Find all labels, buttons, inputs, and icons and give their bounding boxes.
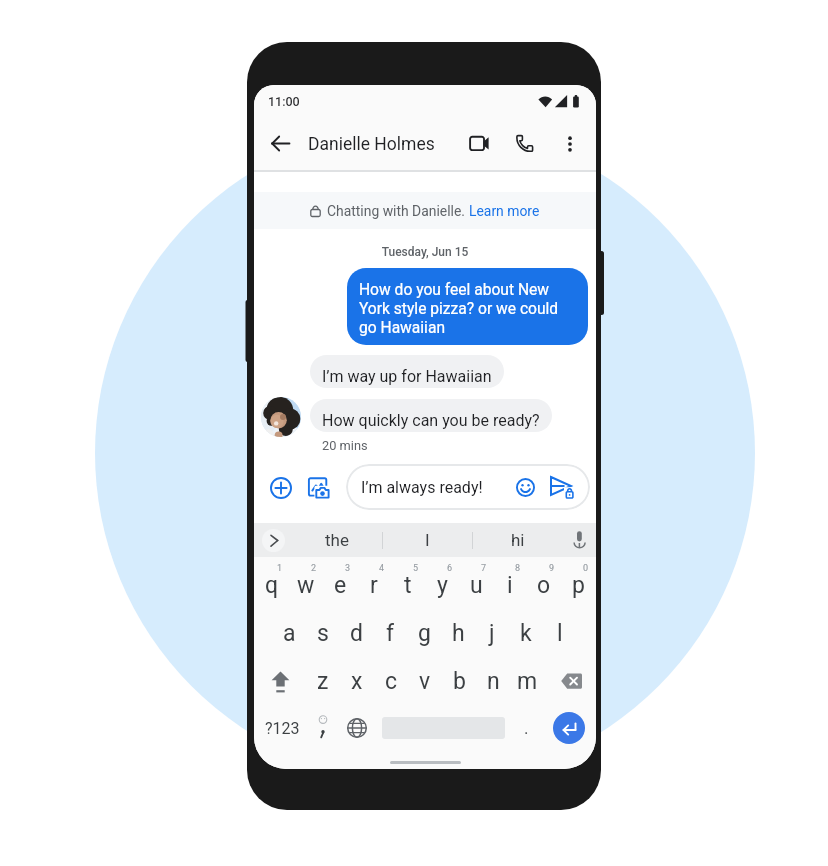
staticText: 4 — [379, 563, 385, 574]
button[interactable]: n — [476, 665, 510, 697]
staticText: c — [385, 668, 398, 695]
staticText: t — [404, 572, 412, 599]
button[interactable]: a — [273, 617, 306, 649]
staticText: d — [350, 620, 363, 647]
button[interactable]: Backspace — [546, 665, 596, 697]
button[interactable]: I — [383, 523, 472, 557]
button[interactable]: Comma and emoji — [306, 706, 340, 750]
staticText: b — [453, 668, 466, 695]
button[interactable]: 8 — [493, 564, 527, 600]
staticText: x — [351, 668, 363, 695]
button[interactable]: 2 — [289, 564, 323, 600]
button[interactable]: x — [340, 665, 374, 697]
button[interactable]: Send message — [544, 469, 580, 505]
staticText: 2 — [311, 563, 317, 574]
button[interactable]: Danielle Holmes profile photo — [261, 397, 301, 437]
button[interactable]: Enter — [553, 712, 585, 744]
button[interactable]: 3 — [323, 564, 357, 600]
staticText: Chatting with Danielle. — [327, 203, 469, 219]
staticText: n — [487, 668, 500, 695]
button[interactable]: How quickly can you be ready? — [310, 399, 552, 432]
button[interactable]: Learn more — [469, 203, 540, 219]
button[interactable]: Add attachment — [265, 472, 297, 504]
button[interactable]: More suggestions — [254, 523, 292, 557]
staticText: 9 — [549, 563, 555, 574]
staticText: l — [557, 620, 563, 647]
button[interactable]: d — [339, 617, 373, 649]
button[interactable]: Emoji — [509, 471, 541, 503]
button[interactable]: z — [306, 665, 340, 697]
button[interactable]: 4 — [357, 564, 391, 600]
staticText: hi — [511, 530, 525, 550]
staticText: r — [370, 572, 378, 599]
button[interactable]: Change keyboard language — [340, 706, 374, 750]
button[interactable]: Chatting with Danielle. — [254, 192, 596, 229]
button[interactable]: c — [374, 665, 408, 697]
button[interactable]: ?123 — [260, 706, 305, 750]
staticText: o — [537, 572, 551, 599]
staticText: I’m always ready! — [361, 478, 483, 497]
staticText: v — [419, 668, 431, 695]
staticText: w — [297, 572, 315, 599]
staticText: 3 — [345, 563, 351, 574]
button[interactable]: the — [292, 523, 382, 557]
staticText: j — [489, 620, 495, 647]
staticText: 11:00 — [268, 94, 300, 109]
staticText: e — [334, 572, 347, 599]
staticText: y — [437, 572, 448, 599]
button[interactable]: b — [442, 665, 476, 697]
staticText: u — [470, 572, 483, 599]
button[interactable]: 0 — [561, 564, 595, 600]
button[interactable]: Call — [503, 122, 547, 166]
staticText: h — [452, 620, 465, 647]
button[interactable]: hi — [473, 523, 562, 557]
button[interactable]: k — [509, 617, 543, 649]
button[interactable]: j — [475, 617, 509, 649]
staticText: Tuesday, Jun 15 — [254, 245, 596, 259]
button[interactable]: I’m way up for Hawaiian — [310, 355, 504, 388]
button[interactable]: s — [306, 617, 339, 649]
staticText: a — [283, 620, 296, 647]
staticText: ?123 — [265, 719, 300, 738]
staticText: . — [524, 718, 529, 738]
button[interactable]: How do you feel about New York style piz… — [347, 268, 588, 345]
staticText: How do you feel about New York style piz… — [359, 281, 559, 337]
button[interactable]: Video call — [457, 121, 501, 165]
button[interactable]: 9 — [527, 564, 561, 600]
button[interactable]: f — [373, 617, 407, 649]
button[interactable]: 7 — [459, 564, 493, 600]
staticText: 7 — [481, 563, 487, 574]
button[interactable]: g — [407, 617, 441, 649]
staticText: k — [520, 620, 532, 647]
button[interactable]: I’m always ready! — [346, 464, 590, 510]
button[interactable]: Danielle Holmes — [308, 134, 435, 155]
button[interactable]: 5 — [391, 564, 425, 600]
staticText: 5 — [413, 563, 419, 574]
staticText: f — [386, 620, 394, 647]
button[interactable]: Voice input — [562, 523, 596, 557]
staticText: i — [507, 572, 513, 599]
button[interactable]: Shift — [254, 665, 306, 697]
staticText: z — [317, 668, 329, 695]
button[interactable]: v — [408, 665, 442, 697]
button[interactable]: h — [441, 617, 475, 649]
staticText: m — [517, 668, 538, 695]
button[interactable]: m — [510, 665, 544, 697]
staticText: How quickly can you be ready? — [322, 411, 540, 430]
staticText: p — [572, 572, 585, 599]
button[interactable]: . — [511, 706, 542, 750]
staticText: 1 — [277, 563, 283, 574]
button[interactable]: l — [543, 617, 577, 649]
staticText: the — [325, 530, 349, 550]
staticText: I’m way up for Hawaiian — [322, 367, 492, 386]
staticText: s — [317, 620, 329, 647]
button[interactable]: Back — [260, 123, 301, 164]
button[interactable]: Send image — [303, 472, 335, 504]
staticText: g — [418, 620, 431, 647]
button[interactable]: More options — [549, 123, 590, 164]
staticText: 0 — [583, 563, 589, 574]
button[interactable]: 6 — [425, 564, 459, 600]
button[interactable]: 1 — [255, 564, 289, 600]
staticText: 8 — [515, 563, 521, 574]
